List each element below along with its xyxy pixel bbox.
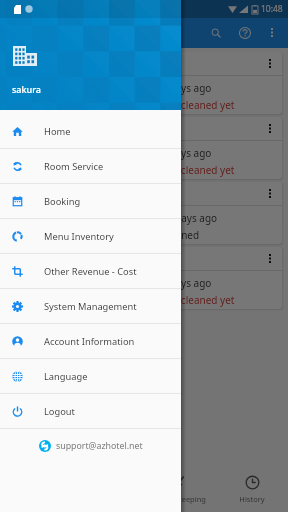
staticText: 12 days ago (161, 211, 218, 225)
button[interactable]: support@azhotel.net (0, 429, 181, 463)
staticText: Booking (44, 195, 81, 208)
staticText: Single bed (14, 81, 64, 95)
button[interactable]: More options (260, 182, 282, 205)
staticText: Room 103 (14, 187, 62, 201)
staticText: Available (14, 228, 57, 242)
staticText: Available (14, 163, 57, 177)
button[interactable]: Room 102 (6, 117, 282, 179)
staticText: 10:48 (261, 3, 283, 15)
button[interactable]: Help (230, 19, 259, 48)
button[interactable]: Search (201, 19, 230, 48)
button[interactable]: More options (259, 20, 285, 46)
staticText: System Management (44, 300, 137, 313)
staticText: Not cleaned yet (161, 163, 235, 177)
staticText: Not cleaned yet (161, 293, 235, 307)
staticText: sakura (12, 83, 41, 95)
button[interactable]: Account Information (0, 324, 181, 358)
button[interactable]: Menu Inventory (0, 219, 181, 253)
staticText: support@azhotel.net (56, 440, 143, 452)
button[interactable]: Room 104 (6, 247, 282, 309)
staticText: Room Service (44, 160, 104, 173)
button[interactable]: More options (260, 117, 282, 140)
staticText: Other Revenue - Cost (44, 265, 137, 278)
staticText: Single bed (14, 146, 64, 160)
button[interactable]: System Management (0, 289, 181, 323)
button[interactable]: Booking (0, 184, 181, 218)
staticText: Single bed (14, 276, 64, 290)
button[interactable]: Other Revenue - Cost (0, 254, 181, 288)
button[interactable]: Room 103 (6, 182, 282, 244)
staticText: Menu Inventory (44, 230, 114, 243)
button[interactable]: Language (0, 359, 181, 393)
button[interactable]: Home (0, 114, 181, 148)
staticText: 2 days ago (161, 146, 212, 160)
staticText: Home (44, 125, 71, 138)
staticText: Account Information (44, 335, 135, 348)
staticText: Not cleaned yet (161, 98, 235, 112)
button[interactable]: Logout (0, 394, 181, 428)
button[interactable]: More options (260, 247, 282, 270)
button[interactable]: Room 101 (6, 52, 282, 114)
staticText: 3 days ago (161, 81, 212, 95)
staticText: Room 101 (14, 57, 62, 71)
staticText: Room 104 (14, 252, 62, 266)
staticText: Available (14, 98, 57, 112)
staticText: 4 days ago (161, 276, 212, 290)
staticText: Cleaned (161, 228, 200, 242)
button[interactable]: Housekeeping (144, 467, 216, 512)
button[interactable]: History (216, 467, 288, 512)
staticText: Housekeeping (155, 494, 206, 504)
staticText: Room 102 (14, 122, 62, 136)
staticText: Logout (44, 405, 75, 418)
staticText: Single bed (14, 211, 64, 225)
staticText: Language (44, 370, 88, 383)
button[interactable]: Room Service (0, 149, 181, 183)
staticText: History (239, 494, 265, 504)
staticText: Available (14, 293, 57, 307)
button[interactable]: More options (260, 52, 282, 75)
